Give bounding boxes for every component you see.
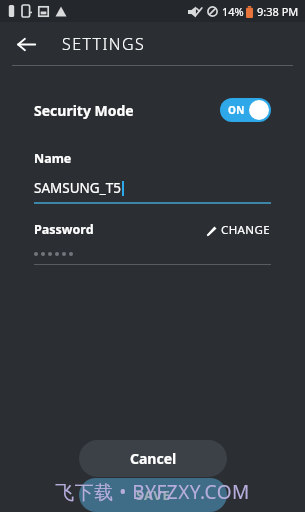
staticText: SETTINGS	[62, 33, 146, 55]
button[interactable]: Back	[8, 26, 44, 62]
staticText: CHANGE	[221, 222, 271, 238]
staticText: Password	[34, 221, 94, 238]
button[interactable]: CHANGE	[206, 222, 271, 238]
button[interactable]: Cancel	[79, 440, 227, 477]
staticText: Name	[34, 150, 72, 167]
staticText: SAMSUNG_T5	[34, 179, 121, 197]
button[interactable]: Name	[34, 150, 271, 204]
staticText: ON	[228, 103, 245, 117]
staticText: 飞下载 • BYFZXY.COM	[0, 479, 305, 505]
button[interactable]: SAVE	[79, 478, 227, 512]
staticText: SAVE	[136, 486, 171, 504]
button[interactable]: Security Mode toggle, on	[220, 98, 271, 122]
staticText: Cancel	[130, 449, 177, 468]
staticText: 9:38 PM	[257, 4, 299, 19]
staticText: 14%	[222, 4, 244, 19]
staticText: Security Mode	[34, 101, 134, 120]
button[interactable]: Security Mode	[34, 97, 271, 123]
